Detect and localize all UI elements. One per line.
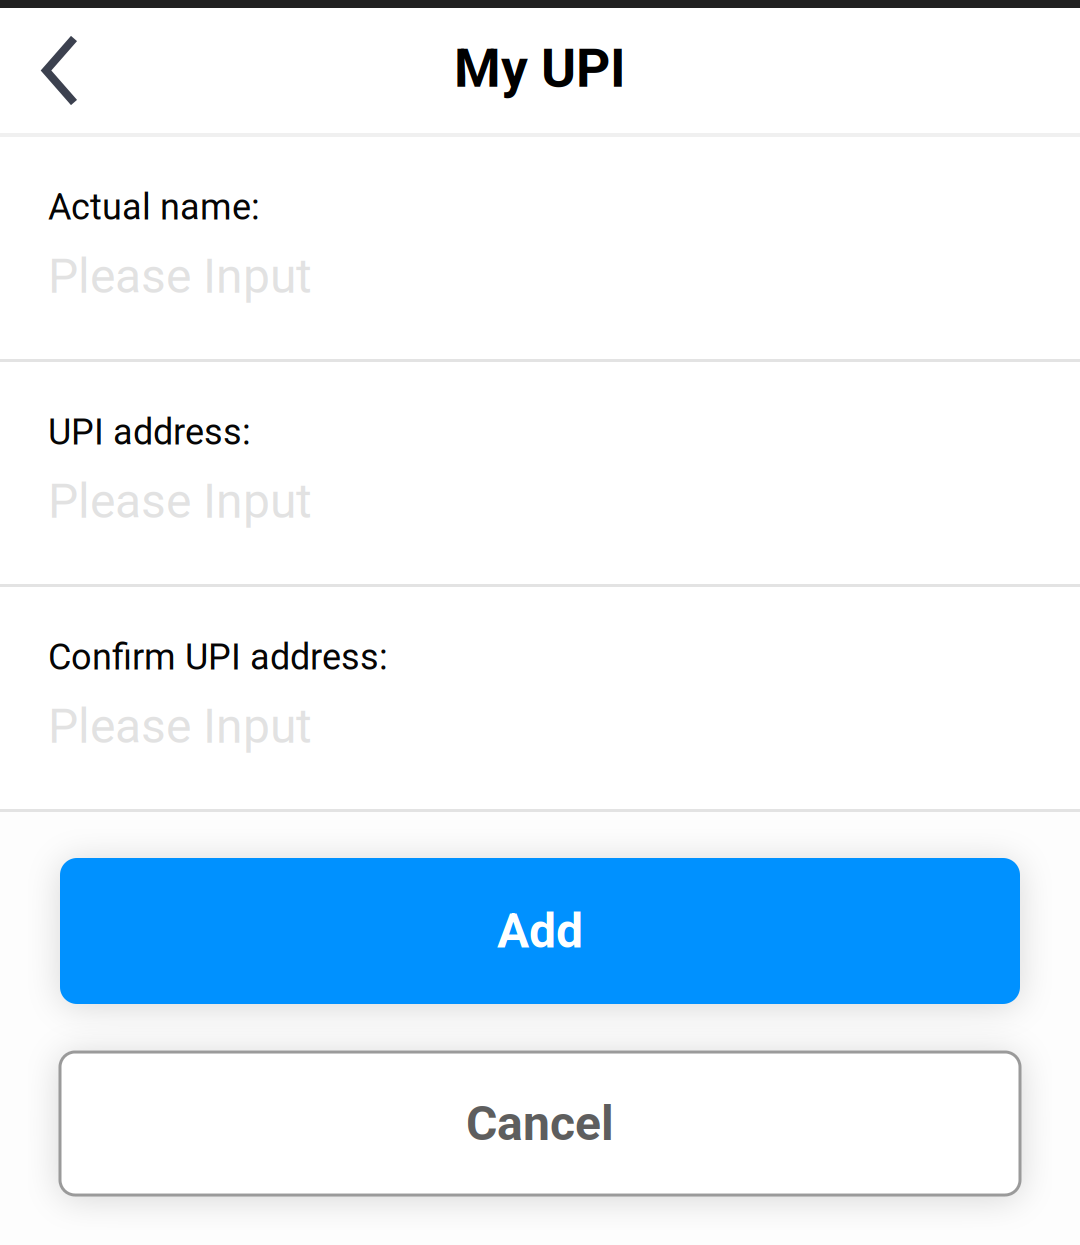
staticText: Add: [497, 903, 583, 959]
button[interactable]: Back: [0, 8, 120, 133]
staticText: UPI address:: [48, 411, 251, 453]
staticText: Please Input: [48, 473, 312, 529]
button[interactable]: Cancel: [60, 1052, 1020, 1195]
staticText: My UPI: [454, 37, 626, 100]
staticText: Actual name:: [48, 186, 260, 228]
staticText: Confirm UPI address:: [48, 636, 388, 678]
button[interactable]: Add: [60, 858, 1020, 1004]
staticText: Please Input: [48, 248, 312, 304]
staticText: Please Input: [48, 698, 312, 754]
staticText: Cancel: [466, 1095, 614, 1152]
